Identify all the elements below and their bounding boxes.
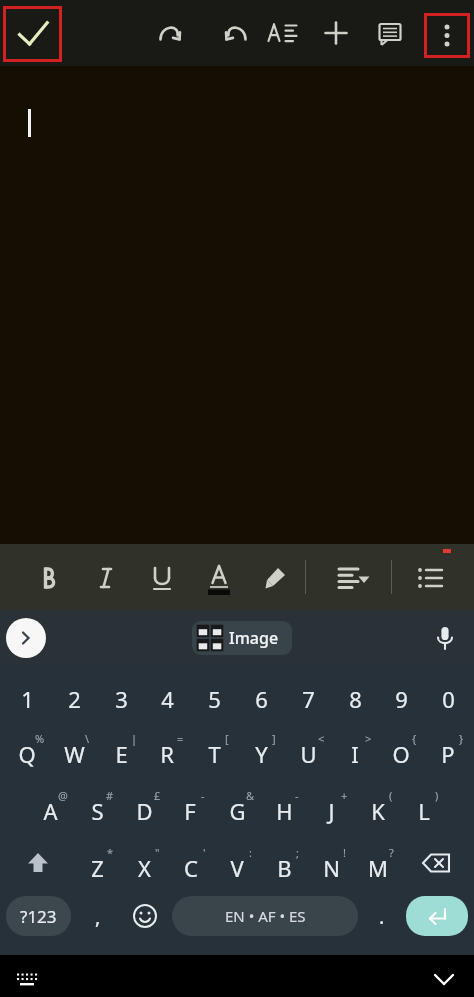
staticText: M — [368, 853, 388, 883]
button[interactable]: Y — [238, 725, 284, 775]
staticText: \ — [85, 731, 90, 746]
button[interactable]: T — [191, 725, 237, 775]
staticText: > — [365, 731, 372, 746]
button[interactable]: Underline — [131, 557, 193, 599]
button[interactable]: EN • AF • ES — [172, 896, 358, 936]
button[interactable]: F — [167, 782, 213, 832]
button[interactable]: C — [168, 839, 214, 889]
button[interactable]: V — [214, 839, 260, 889]
button[interactable]: ?123 — [6, 896, 71, 936]
button[interactable]: Done — [3, 6, 62, 62]
button[interactable]: E — [98, 725, 144, 775]
staticText: C — [184, 853, 198, 883]
button[interactable]: 0 — [425, 677, 471, 721]
staticText: J — [328, 796, 335, 826]
staticText: 6 — [255, 684, 268, 714]
staticText: < — [318, 731, 325, 746]
button[interactable]: Highlight — [245, 557, 307, 599]
button[interactable]: 8 — [332, 677, 378, 721]
staticText: I — [351, 739, 359, 769]
button[interactable]: Backspace — [410, 839, 462, 887]
button[interactable]: 7 — [285, 677, 331, 721]
button[interactable]: G — [214, 782, 260, 832]
staticText: " — [155, 845, 160, 860]
button[interactable]: Expand toolbar — [6, 618, 46, 658]
button[interactable]: D — [121, 782, 167, 832]
button[interactable]: Undo — [148, 14, 192, 52]
staticText: ; — [296, 845, 299, 860]
button[interactable]: A — [27, 782, 73, 832]
button[interactable]: Bullet list — [400, 557, 462, 599]
button[interactable]: Italic — [75, 557, 137, 599]
button[interactable]: Bold — [20, 557, 82, 599]
button[interactable]: S — [74, 782, 120, 832]
button[interactable]: O — [378, 725, 424, 775]
button[interactable]: W — [51, 725, 97, 775]
staticText: EN • AF • ES — [225, 906, 306, 926]
button[interactable]: Z — [74, 839, 120, 889]
button[interactable]: 4 — [144, 677, 190, 721]
button[interactable]: 2 — [51, 677, 97, 721]
staticText: V — [230, 853, 244, 883]
button[interactable]: Hide keyboard — [420, 961, 468, 997]
button[interactable]: Shift — [12, 839, 64, 887]
staticText: 0 — [442, 684, 455, 714]
staticText: Q — [18, 739, 36, 769]
button[interactable]: R — [144, 725, 190, 775]
button[interactable]: Image — [192, 621, 292, 655]
staticText: 5 — [208, 684, 221, 714]
staticText: 1 — [21, 684, 34, 714]
button[interactable]: Q — [4, 725, 50, 775]
button[interactable]: Redo — [214, 14, 258, 52]
button[interactable]: Insert — [314, 14, 358, 52]
staticText: A — [43, 796, 58, 826]
staticText: 4 — [161, 684, 174, 714]
staticText: E — [115, 739, 128, 769]
staticText: T — [208, 739, 221, 769]
button[interactable]: Period — [362, 896, 402, 936]
staticText: F — [184, 796, 196, 826]
button[interactable]: H — [261, 782, 307, 832]
button[interactable]: 1 — [4, 677, 50, 721]
button[interactable]: More options — [424, 13, 470, 58]
button[interactable]: Text colour — [188, 557, 250, 599]
button[interactable]: I — [332, 725, 378, 775]
button[interactable]: P — [425, 725, 471, 775]
staticText: L — [418, 796, 430, 826]
staticText: { — [412, 731, 417, 746]
button[interactable]: 3 — [98, 677, 144, 721]
button[interactable]: J — [308, 782, 354, 832]
button[interactable]: 5 — [191, 677, 237, 721]
staticText: P — [441, 739, 455, 769]
button[interactable]: Alignment — [318, 557, 388, 599]
staticText: D — [136, 796, 153, 826]
button[interactable]: N — [308, 839, 354, 889]
staticText: - — [201, 788, 205, 803]
button[interactable]: M — [355, 839, 401, 889]
staticText: W — [64, 739, 85, 769]
button[interactable]: Comma — [78, 896, 118, 936]
staticText: £ — [154, 788, 161, 803]
button[interactable]: U — [285, 725, 331, 775]
button[interactable]: 6 — [238, 677, 284, 721]
staticText: U — [300, 739, 317, 769]
button[interactable]: B — [261, 839, 307, 889]
staticText: B — [277, 853, 292, 883]
button[interactable]: Enter — [406, 896, 468, 936]
staticText: | — [131, 731, 138, 746]
staticText: [ — [225, 731, 229, 746]
staticText: O — [392, 739, 410, 769]
button[interactable]: Voice input — [428, 621, 462, 655]
staticText: Image — [229, 627, 279, 649]
button[interactable]: Text formatting — [260, 14, 308, 52]
button[interactable]: K — [355, 782, 401, 832]
button[interactable]: Comment — [368, 14, 412, 52]
button[interactable]: L — [401, 782, 447, 832]
button[interactable]: 9 — [378, 677, 424, 721]
button[interactable]: X — [121, 839, 167, 889]
staticText: = — [177, 731, 184, 746]
button[interactable]: Emoji — [124, 896, 166, 936]
staticText: R — [160, 739, 174, 769]
button[interactable]: Switch keyboard — [4, 961, 52, 997]
staticText: @ — [58, 788, 68, 803]
